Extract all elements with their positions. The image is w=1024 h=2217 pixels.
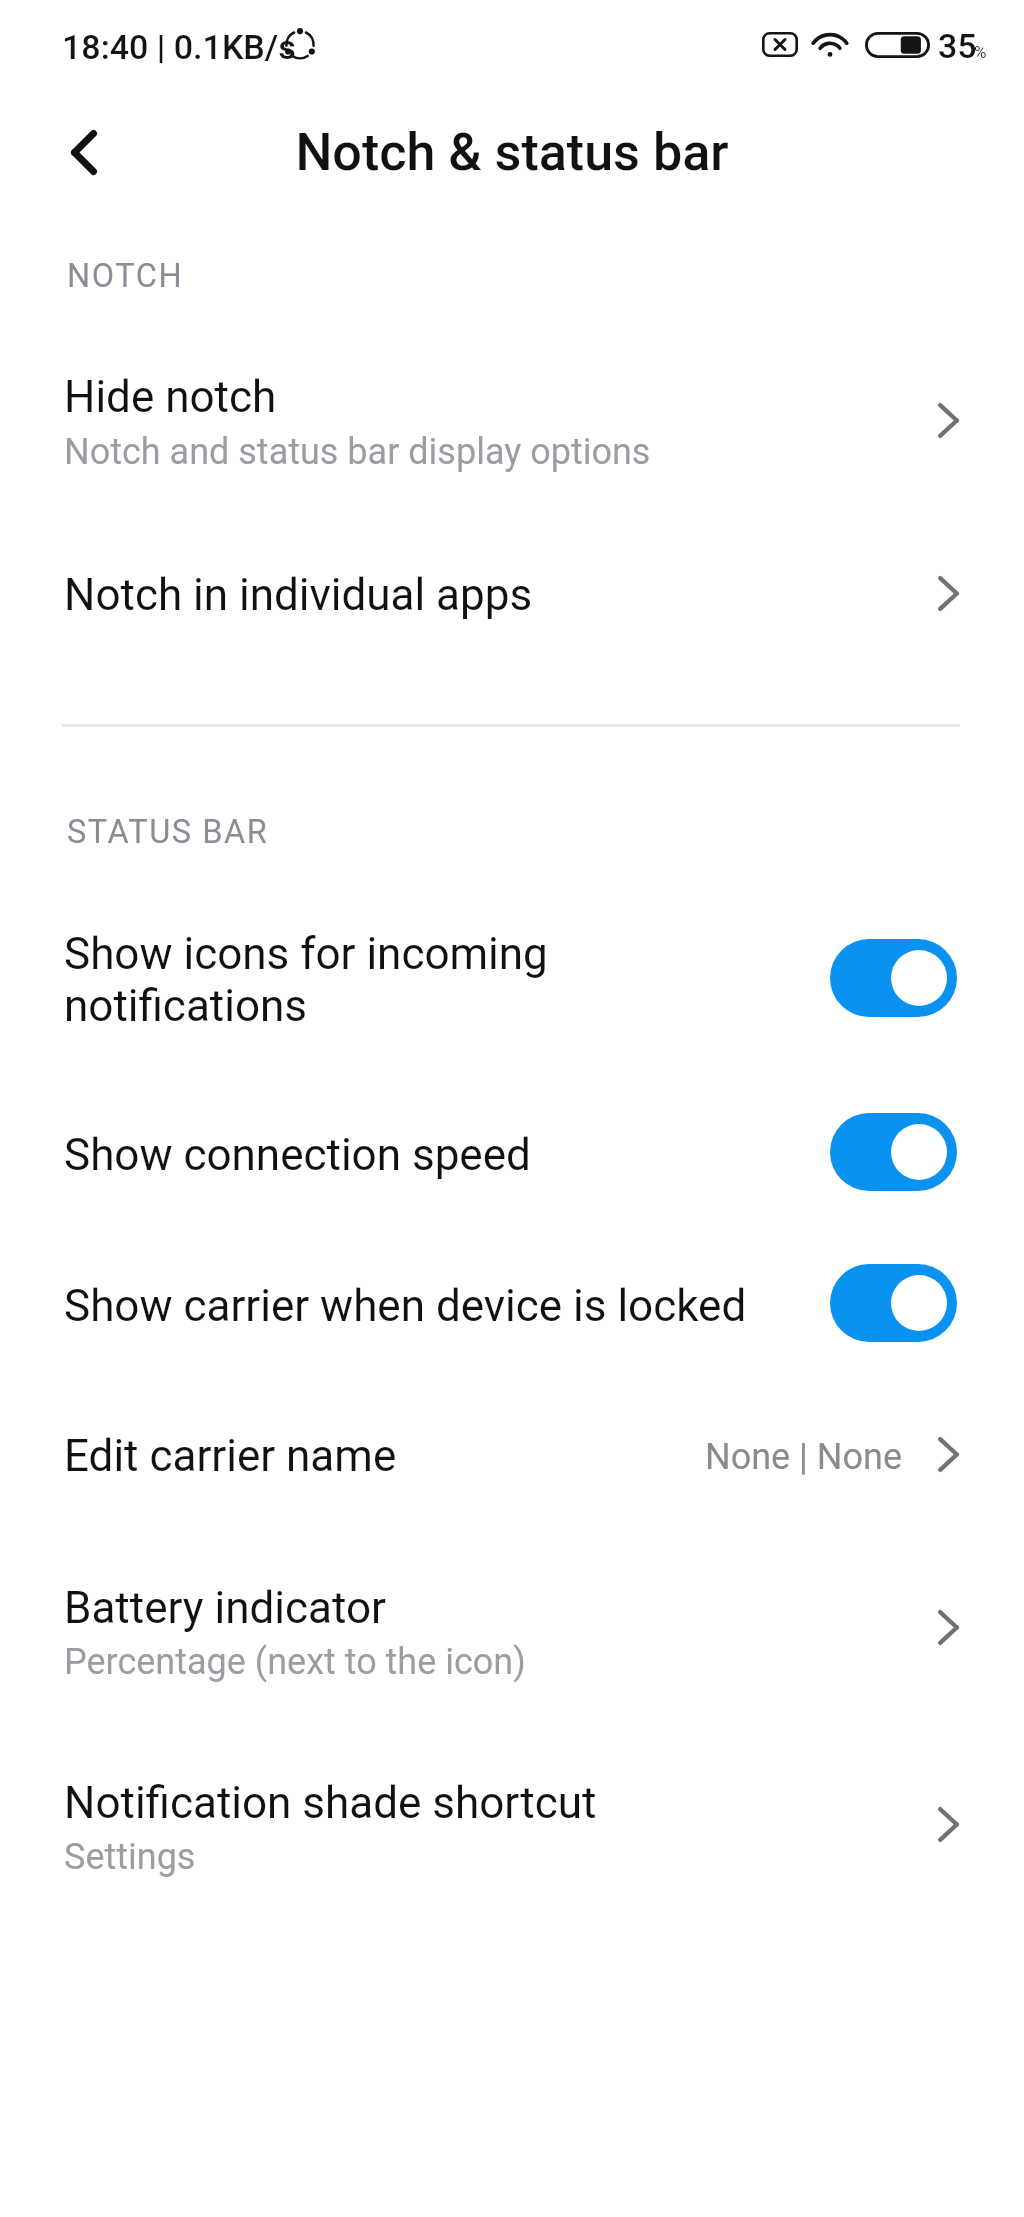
other: Open [938,403,959,438]
staticText: Show icons for incoming notifications [64,928,584,1032]
staticText: Battery indicator [64,1582,386,1634]
button[interactable]: Show connection speed [0,1091,1024,1223]
button[interactable]: Show carrier when device is locked [0,1242,1024,1374]
button[interactable]: Notch in individual apps [0,531,1024,651]
staticText: 35 [938,26,977,66]
other: Open [938,1437,959,1472]
staticText: Notch in individual apps [64,569,533,621]
staticText: % [974,42,987,62]
staticText: Hide notch [64,371,277,423]
staticText: None | None [705,1436,903,1478]
staticText: Notch & status bar [295,122,729,183]
staticText: Show connection speed [64,1129,764,1181]
staticText: Notification shade shortcut [64,1777,597,1829]
button[interactable]: Edit carrier name [0,1392,1024,1512]
staticText: NOTCH [67,257,184,295]
other: Open [938,1807,959,1842]
button[interactable]: Battery indicator [0,1542,1024,1692]
button[interactable]: Show icons for incoming notifications [0,890,1024,1022]
button[interactable]: Back [39,107,129,197]
button[interactable]: Hide notch [0,331,1024,481]
other: Open [938,1610,959,1645]
button[interactable]: Toggle: Show carrier when device is lock… [830,1264,957,1342]
staticText: Show carrier when device is locked [64,1280,784,1332]
button[interactable]: Toggle: Show connection speed [830,1113,957,1191]
staticText: STATUS BAR [67,813,269,851]
staticText: Percentage (next to the icon) [64,1641,526,1683]
staticText: Edit carrier name [64,1430,397,1482]
staticText: 18:40 | 0.1KB/s [62,27,296,67]
staticText: Settings [64,1836,196,1878]
other: Open [938,576,959,611]
button[interactable]: Toggle: Show icons for incoming notifica… [830,939,957,1017]
button[interactable]: Notification shade shortcut [0,1737,1024,1887]
staticText: Notch and status bar display options [64,431,651,473]
